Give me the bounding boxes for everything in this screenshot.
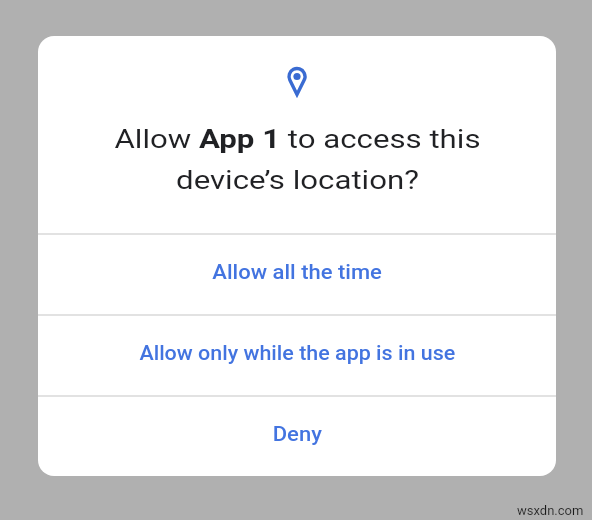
staticText: Allow App 1 to access this device’s loca… <box>114 124 480 196</box>
button[interactable]: Allow all the time <box>38 235 556 314</box>
staticText: wsxdn.com <box>517 503 584 518</box>
button[interactable]: Allow only while the app is in use <box>38 316 556 395</box>
staticText: Allow all the time <box>212 260 383 283</box>
staticText: Allow only while the app is in use <box>139 341 456 364</box>
button[interactable]: Deny <box>38 397 556 476</box>
staticText: Deny <box>273 422 322 445</box>
